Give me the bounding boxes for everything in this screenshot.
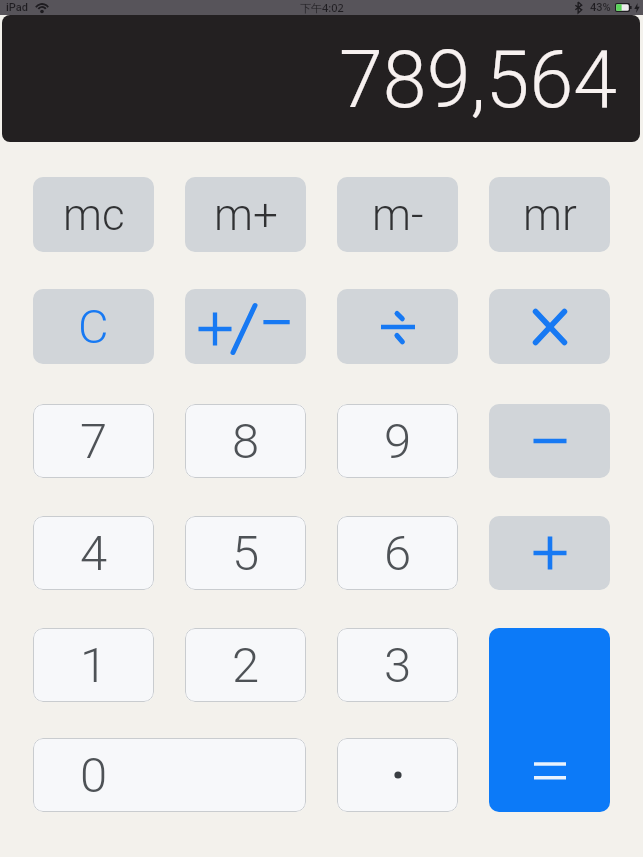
staticText: 3 xyxy=(384,637,412,694)
button[interactable]: mc xyxy=(33,177,154,252)
staticText: m+ xyxy=(214,189,278,241)
staticText: mc xyxy=(63,189,125,241)
button[interactable]: 8 xyxy=(185,404,306,478)
button[interactable]: m+ xyxy=(185,177,306,252)
button[interactable]: 6 xyxy=(337,516,458,590)
staticText: 7 xyxy=(80,413,108,470)
staticText: iPad xyxy=(6,1,28,14)
button[interactable]: 4 xyxy=(33,516,154,590)
button[interactable]: 3 xyxy=(337,628,458,702)
staticText: 8 xyxy=(232,413,260,470)
staticText: m- xyxy=(372,189,424,241)
button[interactable]: 9 xyxy=(337,404,458,478)
staticText: 6 xyxy=(384,525,412,582)
staticText: 5 xyxy=(232,525,260,582)
staticText: 9 xyxy=(384,413,412,470)
button[interactable] xyxy=(489,289,610,364)
button[interactable]: 5 xyxy=(185,516,306,590)
button[interactable]: 2 xyxy=(185,628,306,702)
staticText: mr xyxy=(523,189,577,241)
button[interactable]: 1 xyxy=(33,628,154,702)
button[interactable] xyxy=(489,516,610,590)
button[interactable] xyxy=(185,289,306,364)
button[interactable]: 0 xyxy=(33,738,306,812)
staticText: 2 xyxy=(232,637,260,694)
button[interactable] xyxy=(337,289,458,364)
staticText: C xyxy=(78,299,109,354)
button[interactable] xyxy=(489,404,610,478)
button[interactable]: 7 xyxy=(33,404,154,478)
button[interactable] xyxy=(337,738,458,812)
staticText: 4 xyxy=(80,525,108,582)
staticText: 789,564 xyxy=(339,34,618,127)
button[interactable] xyxy=(489,628,610,812)
staticText: 下午4:02 xyxy=(300,0,344,15)
button[interactable]: m- xyxy=(337,177,458,252)
button[interactable]: C xyxy=(33,289,154,364)
staticText: 43% xyxy=(590,1,611,14)
staticText: 1 xyxy=(80,637,108,694)
button[interactable]: mr xyxy=(489,177,610,252)
staticText: 0 xyxy=(80,747,108,804)
